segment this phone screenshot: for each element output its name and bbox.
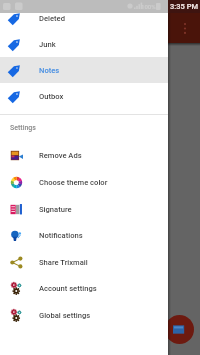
button[interactable]: Remove Ads [0, 142, 168, 169]
staticText: Remove Ads [39, 151, 82, 160]
staticText: Outbox [39, 92, 64, 101]
staticText: Settings [10, 124, 36, 132]
staticText: 3:35 PM [170, 2, 199, 11]
button[interactable]: Notifications [0, 222, 168, 249]
button[interactable]: Share Trixmail [0, 249, 168, 275]
staticText: Share Trixmail [39, 258, 88, 267]
staticText: Account settings [39, 284, 97, 293]
button[interactable]: Signature [0, 196, 168, 222]
button[interactable]: Outbox [0, 83, 168, 109]
staticText: Notifications [39, 231, 83, 240]
staticText: 100% [141, 3, 156, 10]
button[interactable]: Notes [0, 57, 168, 83]
button[interactable]: Global settings [0, 302, 168, 329]
staticText: Signature [39, 205, 72, 214]
button[interactable]: Deleted [0, 5, 168, 31]
staticText: Notes [39, 66, 60, 75]
button[interactable]: Choose theme color [0, 169, 168, 196]
staticText: Junk [39, 40, 56, 49]
staticText: Choose theme color [39, 178, 108, 187]
staticText: Deleted [39, 14, 65, 23]
button[interactable]: More options [178, 13, 192, 43]
button[interactable]: Junk [0, 31, 168, 57]
button[interactable]: Account settings [0, 275, 168, 302]
button[interactable]: Compose mail [165, 315, 194, 344]
staticText: Global settings [39, 311, 91, 320]
